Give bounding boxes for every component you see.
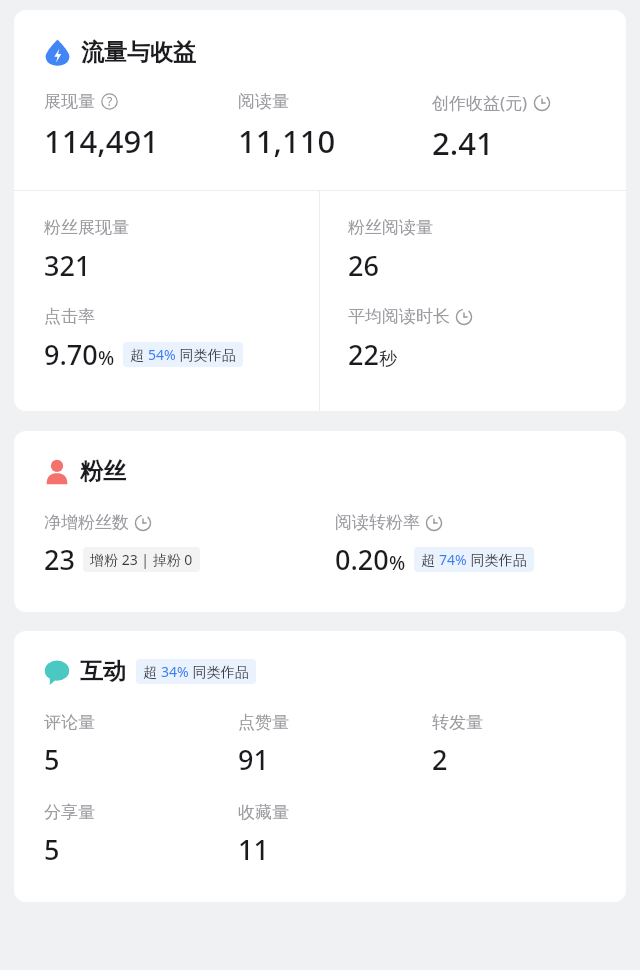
staticText: 26 bbox=[348, 247, 379, 284]
staticText: 互动 bbox=[80, 657, 126, 686]
staticText: 收藏量 bbox=[238, 802, 289, 823]
button[interactable]: Interactions bbox=[44, 657, 256, 686]
button[interactable]: 超 bbox=[123, 342, 243, 367]
staticText: % bbox=[98, 345, 115, 371]
button[interactable]: 超 bbox=[136, 659, 256, 684]
staticText: 增粉 23 | 掉粉 0 bbox=[90, 550, 193, 569]
staticText: 阅读转粉率 bbox=[335, 512, 420, 533]
staticText: 321 bbox=[44, 247, 91, 284]
staticText: 转发量 bbox=[432, 712, 483, 733]
button[interactable]: 超 bbox=[414, 547, 534, 572]
staticText: 114,491 bbox=[44, 120, 159, 162]
staticText: 展现量 bbox=[44, 91, 95, 112]
staticText: 同类作品 bbox=[176, 345, 236, 364]
staticText: 粉丝阅读量 bbox=[348, 217, 433, 238]
staticText: 粉丝 bbox=[80, 457, 126, 486]
staticText: 54% bbox=[148, 345, 176, 364]
staticText: 秒 bbox=[379, 348, 397, 371]
staticText: 2 bbox=[432, 741, 448, 778]
staticText: 超 bbox=[143, 662, 161, 681]
staticText: 粉丝展现量 bbox=[44, 217, 129, 238]
staticText: 23 bbox=[44, 541, 75, 578]
button[interactable]: Traffic and revenue bbox=[44, 38, 196, 67]
button[interactable]: Fans bbox=[44, 457, 126, 486]
staticText: 净增粉丝数 bbox=[44, 512, 129, 533]
staticText: 同类作品 bbox=[189, 662, 249, 681]
staticText: 34% bbox=[161, 662, 189, 681]
button[interactable]: Help bbox=[101, 93, 118, 110]
button[interactable]: Updated time bbox=[425, 514, 443, 532]
staticText: 阅读量 bbox=[238, 91, 289, 112]
staticText: 9.70 bbox=[44, 336, 98, 373]
staticText: 22 bbox=[348, 336, 379, 373]
staticText: 平均阅读时长 bbox=[348, 306, 450, 327]
staticText: 流量与收益 bbox=[81, 38, 196, 67]
staticText: 点赞量 bbox=[238, 712, 289, 733]
other: Traffic and revenue bbox=[44, 39, 71, 66]
staticText: 创作收益(元) bbox=[432, 91, 528, 114]
other: Interactions bbox=[44, 659, 70, 685]
staticText: 分享量 bbox=[44, 802, 95, 823]
staticText: 74% bbox=[439, 550, 467, 569]
staticText: 同类作品 bbox=[467, 550, 527, 569]
staticText: 评论量 bbox=[44, 712, 95, 733]
button[interactable]: Updated time bbox=[134, 514, 152, 532]
staticText: % bbox=[389, 550, 406, 576]
staticText: 0.20 bbox=[335, 541, 389, 578]
staticText: 超 bbox=[421, 550, 439, 569]
staticText: 11 bbox=[238, 831, 269, 868]
staticText: ? bbox=[107, 93, 113, 110]
staticText: 11,110 bbox=[238, 120, 336, 162]
staticText: 超 bbox=[130, 345, 148, 364]
button[interactable]: Updated time bbox=[533, 94, 551, 112]
button[interactable]: Updated time bbox=[455, 308, 473, 326]
button[interactable]: 增粉 23 | 掉粉 0 bbox=[83, 547, 200, 572]
staticText: 91 bbox=[238, 741, 269, 778]
other: Fans bbox=[44, 459, 70, 485]
staticText: 5 bbox=[44, 741, 60, 778]
staticText: 点击率 bbox=[44, 306, 95, 327]
staticText: 2.41 bbox=[432, 122, 494, 164]
staticText: 5 bbox=[44, 831, 60, 868]
